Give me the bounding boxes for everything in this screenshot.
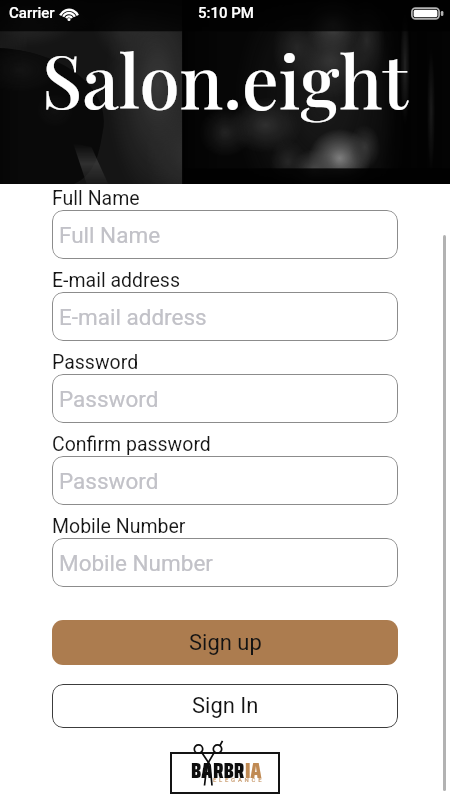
button[interactable]: Password: [52, 456, 398, 505]
button[interactable]: Sign up: [52, 620, 398, 665]
staticText: Carrier: [9, 4, 55, 22]
staticText: 5:10 PM: [198, 4, 254, 22]
staticText: Sign up: [189, 630, 262, 656]
staticText: E-mail address: [59, 304, 207, 330]
button[interactable]: Sign In: [52, 684, 398, 728]
button[interactable]: Mobile Number: [52, 538, 398, 587]
staticText: Mobile Number: [52, 515, 186, 538]
staticText: Salon.eight: [42, 31, 408, 128]
staticText: IA: [245, 754, 262, 787]
staticText: RBR: [213, 754, 245, 787]
staticText: ELEGANCE: [213, 776, 265, 783]
staticText: Full Name: [59, 222, 161, 248]
button[interactable]: E-mail address: [52, 292, 398, 341]
button[interactable]: Password: [52, 374, 398, 423]
staticText: Sign In: [192, 693, 259, 719]
staticText: E-mail address: [52, 269, 180, 292]
button[interactable]: Barbria Elegance: [170, 740, 280, 792]
staticText: Password: [59, 386, 159, 412]
staticText: Password: [52, 351, 139, 374]
button[interactable]: Full Name: [52, 210, 398, 259]
staticText: Mobile Number: [59, 550, 213, 576]
staticText: Password: [59, 468, 159, 494]
staticText: Confirm password: [52, 433, 211, 456]
staticText: BA: [191, 754, 213, 787]
staticText: Full Name: [52, 187, 140, 210]
